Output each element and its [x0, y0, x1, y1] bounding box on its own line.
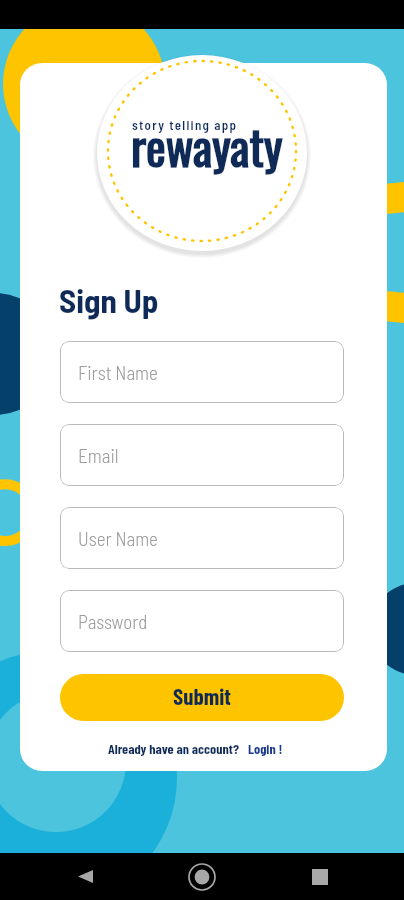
staticText: Email — [78, 444, 119, 467]
staticText: Login ! — [248, 740, 283, 757]
button[interactable]: Submit — [60, 674, 344, 721]
staticText: First Name — [78, 361, 158, 384]
staticText: Already have an account? — [108, 740, 240, 757]
button[interactable]: Back — [62, 853, 109, 900]
button[interactable]: First Name — [60, 341, 344, 403]
button[interactable]: Email — [60, 424, 344, 486]
staticText: Sign Up — [59, 280, 159, 320]
button[interactable]: Home — [178, 853, 225, 900]
staticText: story telling app — [132, 117, 238, 133]
staticText: Submit — [173, 682, 231, 710]
button[interactable]: Recent apps — [296, 853, 343, 900]
staticText: Password — [78, 610, 148, 633]
button[interactable]: Login ! — [248, 740, 283, 757]
button[interactable]: User Name — [60, 507, 344, 569]
staticText: rewayaty — [131, 111, 283, 181]
staticText: User Name — [78, 527, 158, 550]
button[interactable]: Password — [60, 590, 344, 652]
